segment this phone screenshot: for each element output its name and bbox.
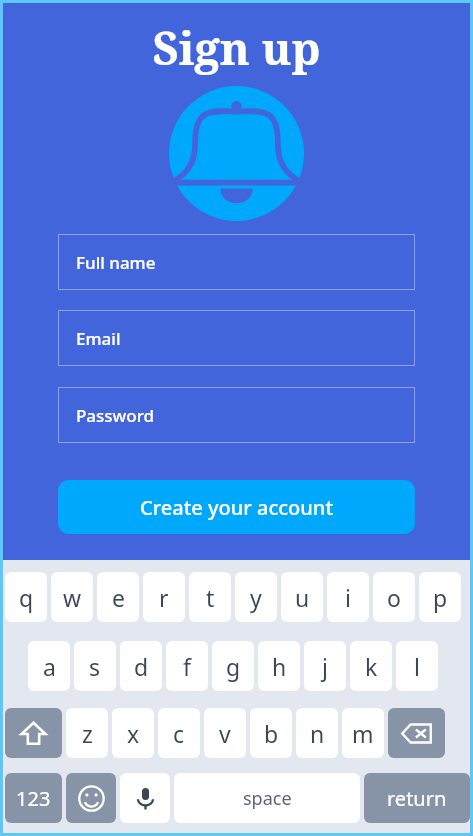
button[interactable]: z (66, 708, 108, 758)
staticText: m (352, 718, 374, 749)
button[interactable]: h (258, 641, 300, 691)
button[interactable]: l (396, 641, 438, 691)
staticText: j (322, 651, 328, 682)
button[interactable]: n (296, 708, 338, 758)
staticText: c (173, 718, 185, 749)
button[interactable]: space (174, 773, 360, 823)
staticText: s (89, 651, 101, 682)
staticText: f (183, 651, 191, 682)
staticText: l (414, 651, 420, 682)
button[interactable]: x (112, 708, 154, 758)
staticText: h (272, 651, 287, 682)
button[interactable]: m (342, 708, 384, 758)
staticText: r (159, 582, 169, 613)
staticText: u (295, 582, 310, 613)
button[interactable]: f (166, 641, 208, 691)
button[interactable]: Create your account (58, 480, 415, 534)
button[interactable]: o (373, 572, 415, 622)
staticText: v (219, 718, 231, 749)
button[interactable]: v (204, 708, 246, 758)
button[interactable]: return (364, 773, 470, 823)
button[interactable]: k (350, 641, 392, 691)
button[interactable]: c (158, 708, 200, 758)
button[interactable]: d (120, 641, 162, 691)
button[interactable]: Emoji (66, 773, 116, 823)
button[interactable]: y (235, 572, 277, 622)
button[interactable]: s (74, 641, 116, 691)
staticText: d (134, 651, 149, 682)
button[interactable]: q (5, 572, 47, 622)
staticText: x (127, 718, 140, 749)
button[interactable]: r (143, 572, 185, 622)
button[interactable]: Full name (58, 234, 415, 290)
staticText: 123 (16, 785, 51, 812)
staticText: o (387, 582, 401, 613)
staticText: Password (76, 404, 155, 427)
button[interactable]: 123 (5, 773, 62, 823)
button[interactable]: t (189, 572, 231, 622)
button[interactable]: e (97, 572, 139, 622)
staticText: e (112, 582, 125, 613)
button[interactable]: b (250, 708, 292, 758)
staticText: n (310, 718, 325, 749)
button[interactable]: Shift (5, 708, 62, 758)
staticText: Create your account (140, 494, 334, 521)
staticText: Full name (76, 251, 156, 274)
staticText: k (365, 651, 378, 682)
staticText: i (345, 582, 351, 613)
button[interactable]: Backspace (388, 708, 445, 758)
button[interactable]: j (304, 641, 346, 691)
staticText: w (63, 582, 82, 613)
staticText: t (206, 582, 215, 613)
staticText: Sign up (3, 17, 470, 78)
staticText: b (264, 718, 279, 749)
staticText: return (387, 785, 447, 812)
button[interactable]: Voice input (120, 773, 170, 823)
staticText: p (433, 582, 448, 613)
staticText: space (243, 786, 292, 811)
button[interactable]: p (419, 572, 461, 622)
staticText: g (226, 651, 241, 682)
button[interactable]: u (281, 572, 323, 622)
staticText: a (43, 651, 56, 682)
button[interactable]: a (28, 641, 70, 691)
staticText: z (82, 718, 93, 749)
staticText: y (250, 582, 262, 613)
staticText: q (19, 582, 34, 613)
button[interactable]: g (212, 641, 254, 691)
button[interactable]: w (51, 572, 93, 622)
button[interactable]: Password (58, 387, 415, 443)
button[interactable]: i (327, 572, 369, 622)
staticText: Email (76, 327, 121, 350)
button[interactable]: Email (58, 310, 415, 366)
